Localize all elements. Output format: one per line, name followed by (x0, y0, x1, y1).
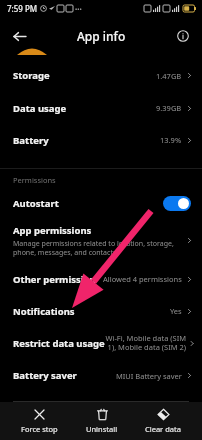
button[interactable]: App details (172, 25, 194, 47)
button[interactable]: Battery saver (0, 359, 202, 392)
staticText: Notifications (13, 305, 75, 318)
staticText: Allowed 4 permissions (103, 274, 182, 284)
staticText: Yes (170, 306, 182, 316)
staticText: Uninstall (86, 424, 118, 434)
staticText: 1.47GB (156, 71, 182, 81)
staticText: Other permission (13, 273, 96, 286)
button[interactable]: Data usage (0, 92, 202, 124)
staticText: Clear data (145, 424, 181, 434)
staticText: Manage permissions related to location, … (13, 239, 174, 257)
staticText: Wi-Fi, Mobile data (SIM 1), Mobile data … (105, 333, 186, 353)
staticText: MIUI Battery saver (116, 371, 182, 381)
staticText: 9.39GB (156, 103, 182, 113)
staticText: 7:59 PM (7, 3, 38, 14)
button[interactable]: Clear data (139, 405, 187, 437)
staticText: ··· (75, 3, 82, 14)
staticText: Battery (13, 134, 49, 147)
button[interactable] (163, 196, 191, 211)
button[interactable]: Uninstall (80, 405, 124, 437)
button[interactable]: Back (8, 25, 30, 47)
button[interactable]: Notifications (0, 295, 202, 327)
button[interactable]: Restrict data usage (0, 327, 202, 359)
staticText: Autostart (13, 197, 59, 210)
button[interactable]: Autostart (0, 188, 202, 218)
button[interactable]: Other permission (0, 263, 202, 295)
staticText: Force stop (21, 424, 58, 434)
staticText: App info (77, 28, 126, 44)
staticText: Data usage (13, 102, 67, 115)
staticText: 13.9% (160, 135, 182, 145)
staticText: Permissions (13, 175, 56, 185)
button[interactable]: Force stop (15, 405, 64, 437)
staticText: Battery saver (13, 369, 77, 382)
button[interactable]: Battery (0, 124, 202, 156)
staticText: Storage (13, 69, 50, 82)
staticText: Restrict data usage (13, 337, 105, 350)
button[interactable]: Storage (0, 59, 202, 92)
staticText: App permissions (13, 224, 92, 237)
button[interactable]: App permissions (0, 218, 202, 263)
